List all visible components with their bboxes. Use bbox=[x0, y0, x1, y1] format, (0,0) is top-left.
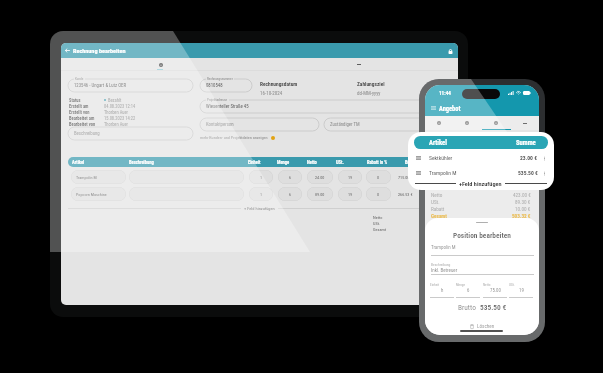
button[interactable]: 1 bbox=[249, 170, 273, 184]
staticText: Bearbeitet am bbox=[69, 116, 95, 121]
staticText: Thorben Auer bbox=[104, 110, 128, 115]
button[interactable]: Mehr bbox=[510, 116, 539, 130]
button[interactable]: Lock bbox=[446, 47, 454, 55]
staticText: Status bbox=[69, 98, 81, 103]
button[interactable]: 0 bbox=[366, 187, 391, 201]
staticText: +Feld hinzufügen bbox=[459, 180, 502, 187]
button[interactable]: Overview tab bbox=[147, 58, 175, 71]
button[interactable]: Popcorn Maschine bbox=[71, 187, 126, 201]
staticText: Bezahlt bbox=[108, 98, 122, 103]
staticText: 19 bbox=[348, 175, 353, 180]
staticText: Trampolin M bbox=[431, 244, 456, 250]
button[interactable]: Options bbox=[541, 155, 547, 161]
staticText: Wiesenteller Straße 45 bbox=[206, 104, 249, 110]
staticText: Artikel bbox=[429, 139, 447, 147]
staticText: Gesamt bbox=[373, 227, 387, 232]
button[interactable]: 19 bbox=[338, 187, 362, 201]
staticText: Popcorn Maschine bbox=[76, 192, 107, 197]
button[interactable]: 6 bbox=[278, 170, 302, 184]
staticText: 503.32 € bbox=[512, 213, 531, 219]
button[interactable]: +Feld hinzufügen bbox=[456, 180, 505, 187]
staticText: mehr Kunden- und Projektdaten anzeigen bbox=[200, 135, 268, 140]
staticText: Projektadresse bbox=[207, 98, 228, 102]
button[interactable]: 89.00 bbox=[307, 187, 333, 201]
button[interactable]: Menu bbox=[429, 102, 438, 114]
button[interactable]: Zuständiger TM bbox=[324, 118, 446, 131]
staticText: 1 bbox=[260, 175, 263, 180]
staticText: Rechnungsnummer bbox=[207, 77, 233, 81]
button[interactable]: More options bbox=[345, 58, 373, 71]
button[interactable]: Sektkühler bbox=[408, 152, 554, 164]
button[interactable]: Info bbox=[425, 116, 453, 130]
staticText: Einheit bbox=[430, 283, 440, 287]
staticText: 535.50 € bbox=[480, 303, 507, 312]
staticText: 16-10-2024 bbox=[260, 90, 283, 96]
staticText: 6 bbox=[289, 192, 292, 197]
staticText: Beschreibung bbox=[129, 160, 154, 165]
staticText: Brutto bbox=[405, 160, 417, 165]
staticText: Kontaktperson bbox=[206, 122, 234, 128]
staticText: 11:44 bbox=[439, 90, 451, 96]
button[interactable]: Löschen bbox=[425, 323, 539, 329]
staticText: 123546 - Ungart & Lutz OER bbox=[74, 83, 127, 89]
staticText: h bbox=[441, 287, 444, 293]
staticText: 75.00 bbox=[490, 287, 501, 293]
staticText: Angebot bbox=[439, 105, 461, 113]
staticText: Thorben Auer bbox=[104, 122, 128, 127]
staticText: Rechnungsdatum bbox=[260, 81, 298, 87]
button[interactable]: Zusammenfassung bbox=[481, 116, 510, 130]
staticText: 6 bbox=[289, 175, 292, 180]
staticText: 6 bbox=[467, 287, 470, 293]
staticText: 423.00 € bbox=[513, 192, 531, 198]
button[interactable]: + Feld hinzufügen bbox=[241, 206, 278, 211]
staticText: Rabatt bbox=[431, 206, 445, 212]
button[interactable]: 19 bbox=[338, 170, 362, 184]
staticText: Artikel bbox=[72, 160, 85, 165]
button[interactable]: Beschreibung bbox=[68, 127, 193, 140]
button[interactable]: 1 bbox=[249, 187, 273, 201]
button[interactable]: Trampolin M bbox=[408, 167, 554, 179]
staticText: Netto bbox=[483, 283, 491, 287]
staticText: Kunde bbox=[75, 77, 84, 81]
button[interactable]: Projektadresse bbox=[200, 100, 446, 113]
staticText: Inkl. Betreuer bbox=[431, 267, 458, 273]
button[interactable]: Back bbox=[63, 43, 72, 58]
button[interactable]: Kunde bbox=[68, 79, 193, 92]
staticText: Netto bbox=[307, 160, 317, 165]
staticText: Netto bbox=[431, 192, 443, 198]
staticText: 0 bbox=[377, 175, 380, 180]
staticText: Summe bbox=[516, 139, 536, 147]
staticText: Rechnung bearbeiten bbox=[73, 47, 126, 54]
staticText: 19 bbox=[519, 287, 524, 293]
staticText: Rabatt in % bbox=[367, 160, 388, 165]
staticText: USt. bbox=[336, 160, 344, 165]
staticText: dd-MM-yyyy bbox=[357, 90, 381, 96]
staticText: Position bearbeiten bbox=[453, 231, 511, 240]
button[interactable]: Trampolin M bbox=[71, 170, 126, 184]
button[interactable]: Rechnungsnummer bbox=[200, 79, 252, 92]
staticText: Menge bbox=[277, 160, 290, 165]
staticText: Erstellt am bbox=[69, 104, 89, 109]
staticText: 04.08.2023 12:14 bbox=[104, 104, 136, 109]
button[interactable]: 0 bbox=[366, 170, 391, 184]
button[interactable]: Options bbox=[541, 170, 547, 176]
button[interactable]: Kontaktperson bbox=[200, 118, 319, 131]
staticText: Brutto bbox=[458, 303, 476, 312]
staticText: Zahlungsziel bbox=[357, 81, 385, 87]
button[interactable]: Positionen bbox=[453, 116, 481, 130]
staticText: Trampolin M bbox=[76, 175, 97, 180]
staticText: Beschreibung bbox=[431, 263, 451, 267]
staticText: Gesamt bbox=[431, 213, 447, 219]
button[interactable]: Artikel bbox=[414, 136, 548, 149]
staticText: 0810548 bbox=[206, 83, 223, 89]
staticText: 19 bbox=[348, 192, 353, 197]
staticText: 24.00 bbox=[315, 175, 325, 180]
staticText: Menge bbox=[456, 283, 466, 287]
staticText: Einheit bbox=[248, 160, 261, 165]
button[interactable]: 6 bbox=[278, 187, 302, 201]
button[interactable]: 24.00 bbox=[307, 170, 333, 184]
staticText: USt. bbox=[509, 283, 515, 287]
staticText: Beschreibung bbox=[74, 131, 100, 137]
